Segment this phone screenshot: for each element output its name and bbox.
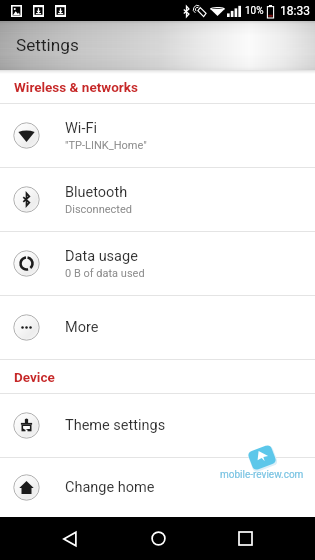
staticText: 18:33 <box>280 4 310 18</box>
staticText: Theme settings <box>65 417 166 434</box>
staticText: Disconnected <box>65 203 132 216</box>
staticText: "TP-LINK_Home" <box>65 139 147 152</box>
button[interactable]: Bluetooth <box>0 168 315 231</box>
staticText: 10% <box>245 5 264 17</box>
staticText: Settings <box>16 35 79 55</box>
button[interactable]: Recent apps <box>222 517 268 560</box>
staticText: 0 B of data used <box>65 267 145 280</box>
staticText: Wireless & networks <box>14 79 138 95</box>
button[interactable]: Data usage <box>0 232 315 295</box>
staticText: Change home <box>65 479 155 496</box>
button[interactable]: More <box>0 296 315 359</box>
staticText: Bluetooth <box>65 184 128 201</box>
staticText: More <box>65 319 99 336</box>
staticText: Wi-Fi <box>65 120 97 137</box>
staticText: Data usage <box>65 248 138 265</box>
button[interactable]: Back <box>47 517 93 560</box>
button[interactable]: Theme settings <box>0 394 315 457</box>
staticText: Device <box>14 369 55 385</box>
button[interactable]: Change home <box>0 458 315 517</box>
staticText: mobile-review.com <box>220 469 304 481</box>
button[interactable]: Home <box>135 517 181 560</box>
button[interactable]: Wi-Fi <box>0 104 315 167</box>
